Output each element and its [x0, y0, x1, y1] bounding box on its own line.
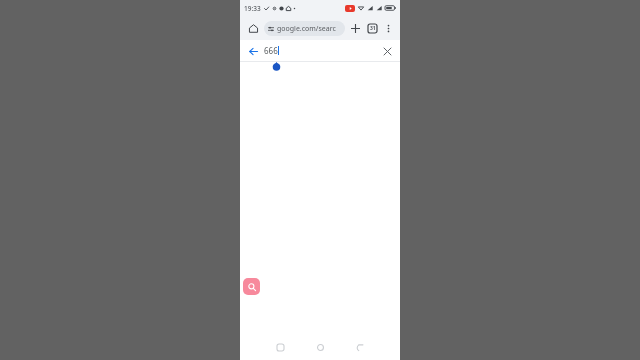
button[interactable]: Recents: [269, 336, 291, 358]
staticText: 19:33: [244, 4, 261, 13]
staticText: 666: [264, 45, 278, 56]
button[interactable]: Home: [309, 336, 331, 358]
button[interactable]: Clear: [379, 43, 395, 59]
button[interactable]: google.com/searc: [264, 21, 345, 36]
button[interactable]: Tab switcher: [364, 20, 380, 36]
staticText: 31: [370, 25, 376, 32]
staticText: google.com/searc: [277, 24, 336, 34]
button[interactable]: Home: [245, 20, 261, 36]
button[interactable]: Back: [349, 336, 371, 358]
button[interactable]: Back: [245, 43, 261, 59]
button[interactable]: More options: [381, 21, 395, 35]
button[interactable]: Search: [243, 278, 260, 295]
button[interactable]: New tab: [347, 20, 363, 36]
